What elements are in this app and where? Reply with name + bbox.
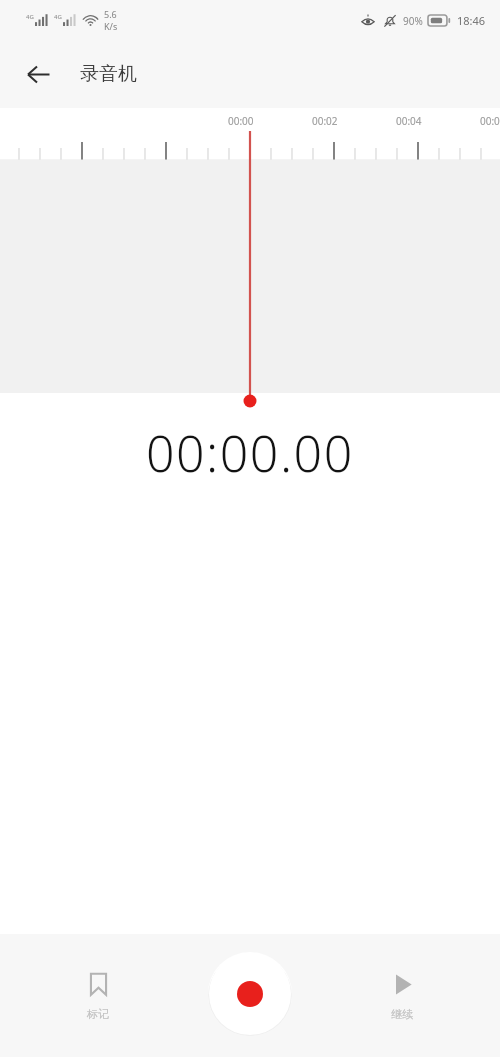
staticText: K/s: [104, 20, 118, 32]
staticText: 90%: [403, 14, 423, 28]
button[interactable]: 标记: [62, 971, 134, 1021]
staticText: 00:02: [312, 114, 338, 128]
staticText: 5.6: [104, 8, 117, 20]
staticText: 4G: [26, 13, 34, 21]
staticText: 00:00: [228, 114, 254, 128]
staticText: 录音机: [80, 62, 137, 86]
staticText: 4G: [54, 13, 62, 21]
staticText: 00:04: [396, 114, 422, 128]
button[interactable]: 继续: [366, 971, 438, 1021]
button[interactable]: Back: [14, 50, 62, 98]
button[interactable]: Record: [208, 952, 292, 1036]
staticText: 标记: [87, 1007, 109, 1021]
staticText: 00:06: [480, 114, 500, 128]
staticText: 18:46: [457, 13, 486, 28]
staticText: 00:00.00: [146, 419, 354, 487]
staticText: 继续: [391, 1007, 413, 1021]
